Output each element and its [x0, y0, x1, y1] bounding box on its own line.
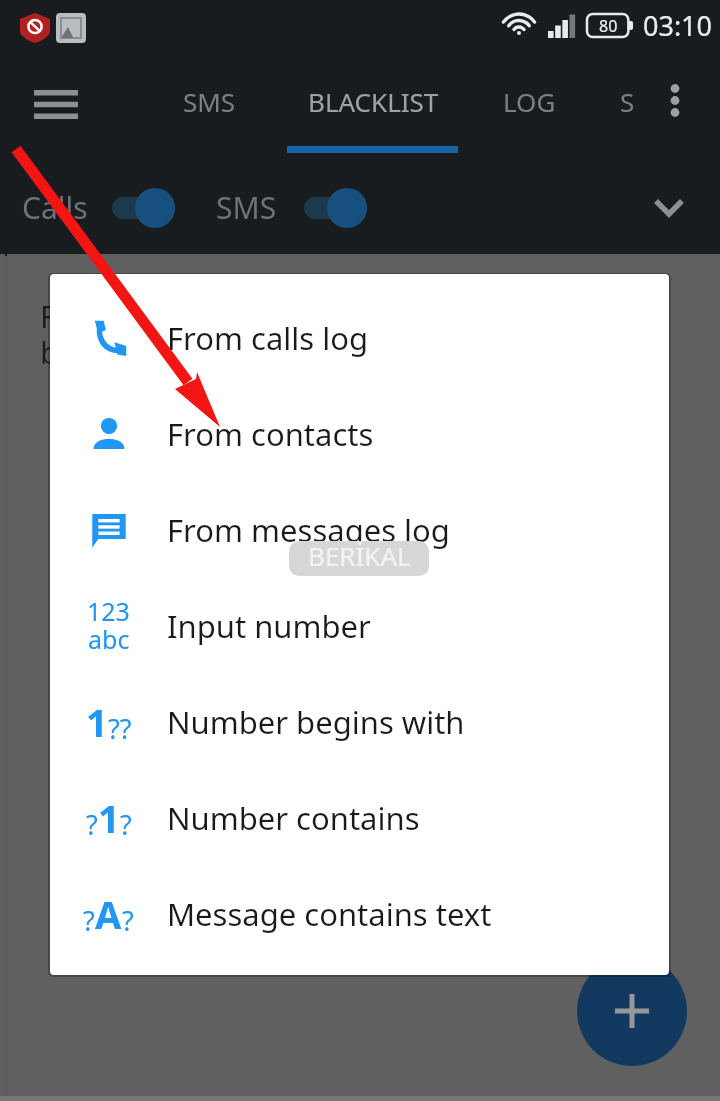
button[interactable]: BLACKLIST: [308, 84, 439, 119]
button[interactable]: S: [620, 84, 635, 119]
staticText: ?: [120, 806, 132, 843]
button[interactable]: Expand: [643, 182, 695, 234]
staticText: SMS: [216, 187, 277, 228]
staticText: Input number: [167, 605, 371, 647]
staticText: ??: [108, 710, 132, 747]
button[interactable]: SMS: [216, 187, 277, 228]
staticText: blacklist: [40, 331, 158, 373]
staticText: Number begins with: [167, 701, 465, 743]
staticText: ?: [83, 902, 95, 939]
button[interactable]: Menu: [23, 71, 89, 137]
staticText: Message contains text: [167, 893, 492, 935]
staticText: ?: [122, 902, 134, 939]
button[interactable]: 123: [50, 576, 669, 672]
staticText: SMS: [183, 84, 236, 119]
staticText: BLACKLIST: [308, 84, 439, 119]
staticText: LOG: [503, 84, 556, 119]
staticText: 1: [86, 696, 108, 748]
button[interactable]: ?: [50, 864, 669, 960]
button[interactable]: 1: [50, 672, 669, 768]
button[interactable]: ?: [50, 768, 669, 864]
staticText: A: [95, 888, 122, 940]
button[interactable]: From calls log: [50, 288, 669, 384]
staticText: 123: [87, 594, 130, 628]
button[interactable]: From messages log: [50, 480, 669, 576]
staticText: S: [620, 84, 635, 119]
staticText: ?: [86, 806, 98, 843]
button[interactable]: SMS: [183, 84, 236, 119]
button[interactable]: [112, 186, 178, 230]
staticText: Calls: [22, 187, 88, 228]
staticText: 1: [98, 792, 120, 844]
staticText: From messages log: [167, 509, 450, 551]
staticText: abc: [88, 622, 130, 656]
button[interactable]: Add: [577, 956, 687, 1066]
button[interactable]: From contacts: [50, 384, 669, 480]
staticText: From contacts: [167, 413, 374, 455]
button[interactable]: More options: [650, 75, 700, 125]
button[interactable]: LOG: [503, 84, 556, 119]
staticText: Filter: [40, 295, 114, 337]
staticText: Number contains: [167, 797, 420, 839]
staticText: From calls log: [167, 317, 369, 359]
staticText: 03:10: [643, 7, 713, 44]
staticText: 80: [599, 15, 618, 37]
staticText: BERİKAL: [308, 541, 411, 573]
button[interactable]: Calls: [22, 187, 88, 228]
button[interactable]: [304, 186, 370, 230]
